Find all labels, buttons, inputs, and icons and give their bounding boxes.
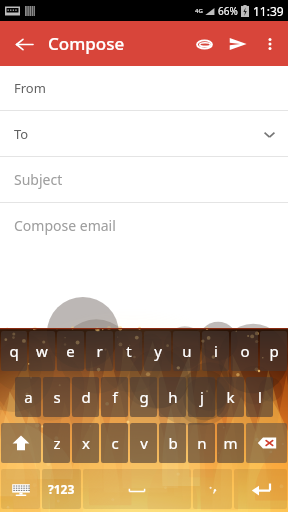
- staticText: h: [168, 387, 178, 407]
- button[interactable]: Space: [83, 469, 191, 509]
- staticText: From: [14, 79, 46, 97]
- button[interactable]: r: [86, 331, 113, 371]
- staticText: u: [182, 341, 192, 361]
- button[interactable]: c: [101, 423, 128, 463]
- staticText: v: [140, 433, 148, 453]
- button[interactable]: m: [217, 423, 244, 463]
- staticText: o: [240, 341, 250, 361]
- staticText: m: [223, 433, 238, 453]
- button[interactable]: Enter: [234, 469, 287, 509]
- button[interactable]: n: [188, 423, 215, 463]
- staticText: To: [14, 125, 29, 143]
- button[interactable]: t: [115, 331, 142, 371]
- button[interactable]: Delete: [246, 423, 287, 463]
- staticText: s: [53, 387, 61, 407]
- button[interactable]: Subject: [0, 157, 288, 202]
- button[interactable]: Attach file: [187, 27, 221, 61]
- staticText: z: [53, 433, 61, 453]
- staticText: x: [82, 433, 90, 453]
- button[interactable]: j: [188, 377, 215, 417]
- button[interactable]: b: [159, 423, 186, 463]
- staticText: n: [197, 433, 207, 453]
- staticText: ?123: [48, 481, 75, 497]
- button[interactable]: l: [246, 377, 273, 417]
- staticText: d: [81, 387, 91, 407]
- button[interactable]: Comma: [193, 469, 232, 509]
- staticText: p: [269, 341, 279, 361]
- button[interactable]: e: [57, 331, 84, 371]
- button[interactable]: g: [130, 377, 157, 417]
- staticText: r: [96, 341, 103, 361]
- staticText: l: [258, 387, 262, 407]
- staticText: w: [36, 341, 48, 361]
- button[interactable]: q: [1, 331, 27, 371]
- button[interactable]: ?123: [42, 469, 81, 509]
- staticText: Compose email: [14, 216, 116, 235]
- button[interactable]: Show Cc and Bcc: [258, 123, 280, 145]
- button[interactable]: Compose email: [0, 203, 288, 247]
- button[interactable]: z: [43, 423, 70, 463]
- staticText: f: [112, 387, 118, 407]
- button[interactable]: s: [43, 377, 70, 417]
- button[interactable]: a: [15, 377, 41, 417]
- staticText: j: [200, 387, 204, 407]
- staticText: i: [214, 341, 218, 361]
- button[interactable]: p: [260, 331, 287, 371]
- button[interactable]: o: [231, 331, 258, 371]
- button[interactable]: Send: [221, 27, 255, 61]
- staticText: 4G: [195, 7, 203, 15]
- button[interactable]: w: [29, 331, 55, 371]
- button[interactable]: v: [130, 423, 157, 463]
- button[interactable]: i: [202, 331, 229, 371]
- button[interactable]: d: [72, 377, 99, 417]
- button[interactable]: Navigate up: [6, 26, 42, 62]
- button[interactable]: To: [0, 111, 288, 156]
- staticText: q: [9, 341, 19, 361]
- staticText: 11:39: [253, 3, 284, 19]
- staticText: a: [24, 387, 33, 407]
- staticText: g: [139, 387, 149, 407]
- staticText: Subject: [14, 170, 63, 189]
- staticText: b: [168, 433, 178, 453]
- staticText: k: [226, 387, 235, 407]
- button[interactable]: More options: [255, 29, 285, 59]
- staticText: y: [154, 341, 162, 361]
- button[interactable]: k: [217, 377, 244, 417]
- button[interactable]: Shift: [1, 423, 41, 463]
- button[interactable]: u: [173, 331, 200, 371]
- button[interactable]: Change input method: [1, 469, 40, 509]
- button[interactable]: y: [144, 331, 171, 371]
- staticText: t: [126, 341, 132, 361]
- button[interactable]: From: [0, 66, 288, 110]
- button[interactable]: x: [72, 423, 99, 463]
- staticText: 66%: [218, 4, 238, 18]
- button[interactable]: f: [101, 377, 128, 417]
- button[interactable]: h: [159, 377, 186, 417]
- staticText: Compose: [48, 32, 125, 55]
- staticText: c: [111, 433, 119, 453]
- staticText: e: [66, 341, 75, 361]
